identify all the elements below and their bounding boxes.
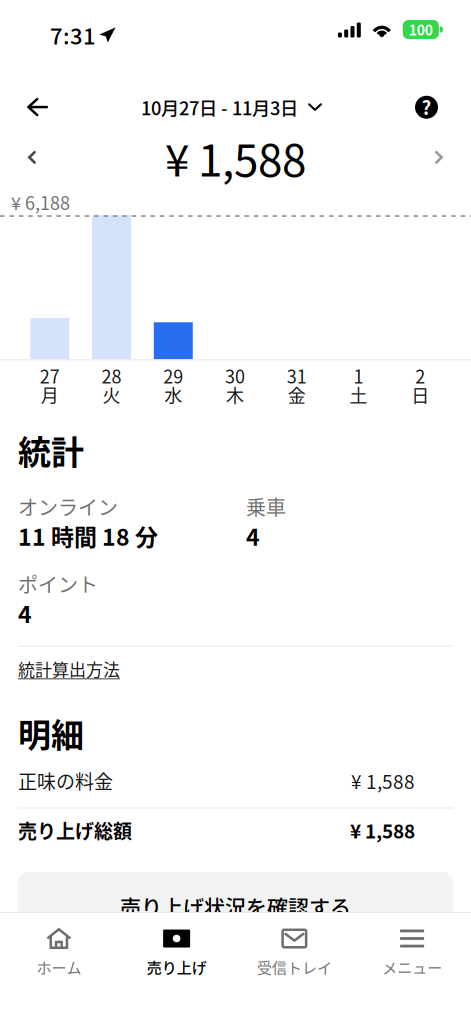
staticText: 木 bbox=[226, 382, 244, 408]
staticText: 売り上げ bbox=[147, 956, 207, 978]
staticText: メニュー bbox=[382, 956, 442, 978]
button[interactable]: ホーム bbox=[0, 913, 118, 992]
staticText: 日 bbox=[411, 382, 429, 408]
staticText: 金 bbox=[288, 382, 306, 408]
staticText: 明細 bbox=[18, 709, 84, 757]
staticText: ¥ 1,588 bbox=[350, 816, 415, 844]
staticText: 1 bbox=[353, 363, 363, 389]
staticText: ポイント bbox=[18, 569, 98, 598]
button[interactable]: メニュー bbox=[353, 913, 471, 992]
staticText: 乗車 bbox=[246, 492, 286, 521]
button[interactable]: 売り上げ bbox=[118, 913, 236, 992]
staticText: ¥ 1,588 bbox=[351, 767, 415, 794]
staticText: 統計 bbox=[18, 426, 84, 474]
button[interactable]: Previous week bbox=[0, 134, 54, 181]
button[interactable]: Help bbox=[399, 85, 471, 124]
staticText: オンライン bbox=[18, 492, 118, 521]
staticText: 11 時間 18 分 bbox=[18, 519, 158, 552]
staticText: 30 bbox=[225, 363, 245, 389]
staticText: 売り上げ総額 bbox=[18, 816, 132, 844]
staticText: 土 bbox=[349, 382, 367, 408]
button[interactable]: 売り上げ状況を確認する bbox=[18, 872, 453, 940]
staticText: 31 bbox=[287, 363, 307, 389]
staticText: 水 bbox=[164, 382, 182, 408]
button[interactable]: 統計算出方法 bbox=[18, 647, 120, 687]
staticText: 2 bbox=[415, 363, 425, 389]
staticText: ? bbox=[421, 93, 431, 120]
staticText: 正味の料金 bbox=[18, 767, 113, 794]
staticText: ホーム bbox=[36, 956, 81, 978]
staticText: 月 bbox=[41, 382, 59, 408]
staticText: ¥ 1,588 bbox=[165, 125, 306, 189]
button[interactable]: Next week bbox=[417, 134, 471, 181]
staticText: 4 bbox=[246, 519, 260, 552]
staticText: 29 bbox=[163, 363, 183, 389]
staticText: 売り上げ状況を確認する bbox=[120, 891, 351, 921]
staticText: 28 bbox=[102, 363, 122, 389]
button[interactable]: 受信トレイ bbox=[235, 913, 353, 992]
staticText: 統計算出方法 bbox=[18, 657, 120, 681]
staticText: 7:31 bbox=[50, 19, 96, 51]
staticText: 受信トレイ bbox=[257, 956, 332, 978]
staticText: 100 bbox=[409, 19, 433, 40]
staticText: ¥ 6,188 bbox=[11, 189, 70, 215]
staticText: 27 bbox=[40, 363, 60, 389]
button[interactable]: Back bbox=[0, 87, 64, 122]
staticText: 10月27日 - 11月3日 bbox=[141, 94, 298, 120]
staticText: 火 bbox=[103, 382, 121, 408]
staticText: 4 bbox=[18, 596, 32, 630]
button[interactable]: 10月27日 - 11月3日 bbox=[141, 83, 322, 125]
